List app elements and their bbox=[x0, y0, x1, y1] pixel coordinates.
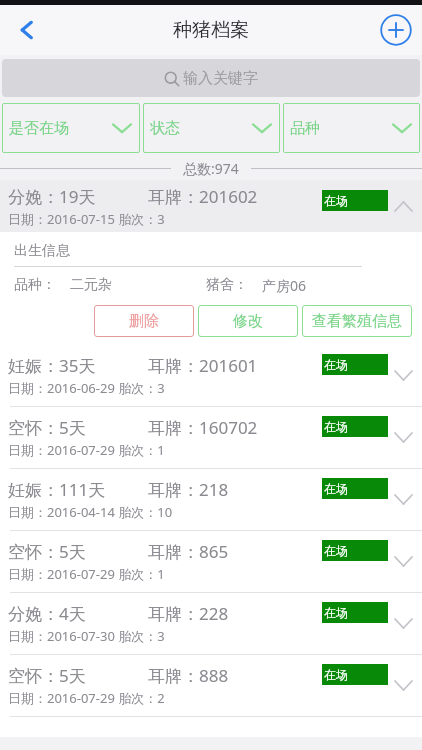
staticText: 妊娠：35天 bbox=[8, 354, 148, 377]
staticText: 品种 bbox=[290, 119, 320, 138]
button[interactable]: 修改 bbox=[198, 305, 298, 337]
staticText: 在场 bbox=[324, 193, 348, 208]
staticText: 在场 bbox=[324, 357, 348, 372]
button[interactable]: 分娩：19天 bbox=[0, 180, 422, 232]
staticText: 日期：2016-07-29 胎次：2 bbox=[8, 689, 165, 707]
staticText: 日期：2016-07-29 胎次：1 bbox=[8, 565, 165, 583]
button[interactable]: 输入关键字 bbox=[2, 59, 420, 97]
button[interactable]: 品种 bbox=[283, 103, 420, 153]
staticText: 分娩：19天 bbox=[8, 185, 148, 208]
staticText: 查看繁殖信息 bbox=[312, 312, 402, 331]
staticText: 耳牌：218 bbox=[148, 478, 229, 501]
staticText: 总数:974 bbox=[183, 159, 239, 178]
staticText: 在场 bbox=[324, 481, 348, 496]
staticText: 输入关键字 bbox=[183, 69, 258, 88]
staticText: 日期：2016-07-30 胎次：3 bbox=[8, 627, 165, 645]
staticText: 分娩：4天 bbox=[8, 602, 148, 625]
button[interactable]: Back bbox=[0, 5, 54, 55]
button[interactable]: 妊娠：35天 bbox=[0, 345, 422, 406]
staticText: 耳牌：865 bbox=[148, 540, 229, 563]
staticText: 品种： bbox=[14, 276, 56, 294]
staticText: 空怀：5天 bbox=[8, 416, 148, 439]
button[interactable]: 妊娠：111天 bbox=[0, 469, 422, 530]
button[interactable]: 空怀：5天 bbox=[0, 531, 422, 592]
staticText: 日期：2016-06-29 胎次：3 bbox=[8, 379, 165, 397]
staticText: 日期：2016-07-15 胎次：3 bbox=[8, 210, 165, 228]
staticText: 耳牌：201601 bbox=[148, 354, 258, 377]
button[interactable]: 分娩：4天 bbox=[0, 593, 422, 654]
button[interactable]: 空怀：5天 bbox=[0, 655, 422, 716]
staticText: 在场 bbox=[324, 667, 348, 682]
button[interactable]: 查看繁殖信息 bbox=[302, 305, 412, 337]
staticText: 在场 bbox=[324, 605, 348, 620]
button[interactable]: 空怀：5天 bbox=[0, 407, 422, 468]
button[interactable]: 状态 bbox=[143, 103, 280, 153]
staticText: 空怀：5天 bbox=[8, 664, 148, 687]
staticText: 在场 bbox=[324, 543, 348, 558]
button[interactable]: 是否在场 bbox=[2, 103, 140, 153]
staticText: 删除 bbox=[129, 312, 159, 331]
staticText: 二元杂 bbox=[70, 276, 206, 294]
staticText: 妊娠：111天 bbox=[8, 478, 148, 501]
staticText: 耳牌：160702 bbox=[148, 416, 258, 439]
staticText: 耳牌：228 bbox=[148, 602, 229, 625]
staticText: 修改 bbox=[233, 312, 263, 331]
staticText: 种猪档案 bbox=[173, 18, 249, 42]
staticText: 状态 bbox=[150, 119, 180, 138]
staticText: 日期：2016-07-29 胎次：1 bbox=[8, 441, 165, 459]
staticText: 在场 bbox=[324, 419, 348, 434]
staticText: 耳牌：888 bbox=[148, 664, 229, 687]
staticText: 是否在场 bbox=[9, 119, 69, 138]
button[interactable]: 删除 bbox=[94, 305, 194, 337]
staticText: 产房06 bbox=[262, 276, 412, 295]
button[interactable]: Add bbox=[370, 5, 422, 55]
staticText: 出生信息 bbox=[14, 242, 70, 260]
staticText: 日期：2016-04-14 胎次：10 bbox=[8, 503, 173, 521]
staticText: 空怀：5天 bbox=[8, 540, 148, 563]
staticText: 耳牌：201602 bbox=[148, 185, 258, 208]
staticText: 猪舍： bbox=[206, 276, 248, 294]
